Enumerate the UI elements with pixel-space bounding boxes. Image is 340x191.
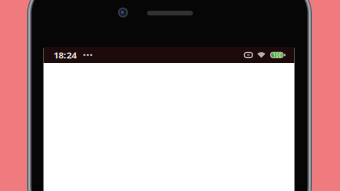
staticText: 100 xyxy=(272,51,281,59)
staticText: 18:24 xyxy=(53,49,76,61)
